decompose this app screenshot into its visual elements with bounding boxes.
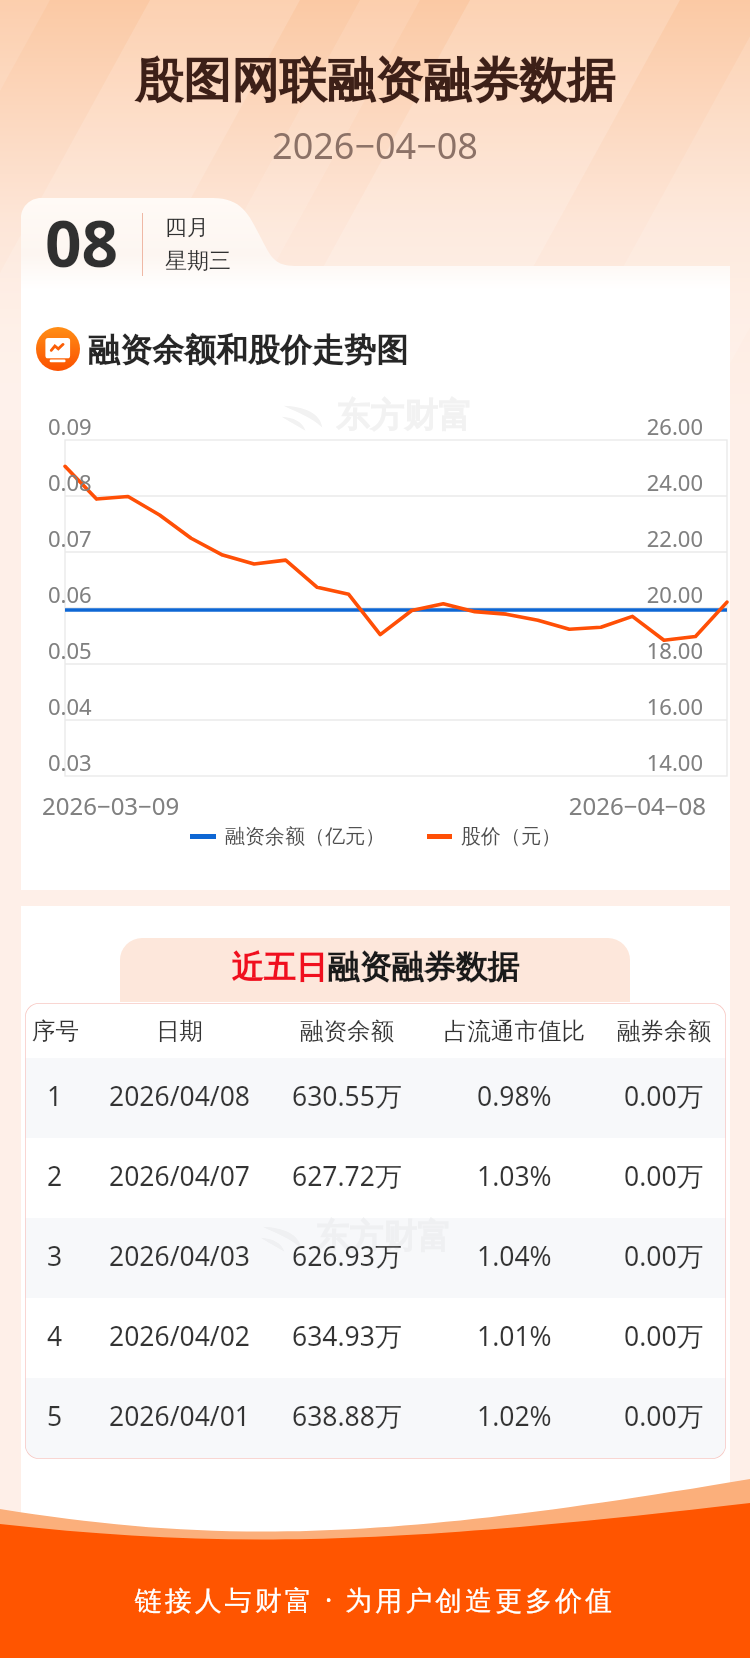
staticText: 0.03 xyxy=(48,747,92,777)
button[interactable] xyxy=(25,1298,726,1378)
staticText: 序号 xyxy=(32,1016,79,1046)
staticText: 20.00 xyxy=(551,579,703,609)
staticText: 0.00万 xyxy=(624,1398,704,1434)
staticText: 26.00 xyxy=(551,411,703,441)
staticText: 2026/04/02 xyxy=(109,1318,250,1354)
staticText: 0.04 xyxy=(48,691,92,721)
staticText: 融资余额 xyxy=(300,1016,394,1046)
staticText: 1.04% xyxy=(477,1238,552,1274)
button[interactable] xyxy=(25,1058,726,1138)
staticText: 24.00 xyxy=(551,467,703,497)
staticText: 2026−03−09 xyxy=(42,789,180,822)
button[interactable] xyxy=(25,1218,726,1298)
staticText: 殷图网联融资融券数据 xyxy=(0,51,750,111)
staticText: 星期三 xyxy=(165,247,231,275)
staticText: 融资余额（亿元） xyxy=(225,824,385,849)
staticText: 627.72万 xyxy=(292,1158,402,1194)
staticText: 16.00 xyxy=(551,691,703,721)
button[interactable] xyxy=(25,1138,726,1218)
staticText: 0.05 xyxy=(48,635,92,665)
staticText: 0.08 xyxy=(48,467,92,497)
button[interactable] xyxy=(25,1378,726,1458)
staticText: 3 xyxy=(47,1238,63,1274)
staticText: 2 xyxy=(47,1158,63,1194)
staticText: 0.09 xyxy=(48,411,92,441)
staticText: 占流通市值比 xyxy=(444,1016,585,1046)
staticText: 634.93万 xyxy=(292,1318,402,1354)
staticText: 股价（元） xyxy=(461,824,561,849)
staticText: 东方财富 xyxy=(336,394,472,437)
staticText: 0.98% xyxy=(477,1078,552,1114)
staticText: 1.01% xyxy=(477,1318,552,1354)
staticText: 四月 xyxy=(165,214,209,242)
staticText: 近五日融资融券数据 xyxy=(21,947,730,987)
staticText: 东方财富 xyxy=(315,1215,451,1258)
staticText: 融资余额和股价走势图 xyxy=(88,330,408,370)
staticText: 1 xyxy=(47,1078,63,1114)
staticText: 0.00万 xyxy=(624,1318,704,1354)
staticText: 2026/04/03 xyxy=(109,1238,250,1274)
staticText: 22.00 xyxy=(551,523,703,553)
staticText: 1.03% xyxy=(477,1158,552,1194)
staticText: 1.02% xyxy=(477,1398,552,1434)
staticText: 638.88万 xyxy=(292,1398,402,1434)
staticText: 18.00 xyxy=(551,635,703,665)
staticText: 融券余额 xyxy=(617,1016,711,1046)
staticText: 14.00 xyxy=(551,747,703,777)
staticText: 0.06 xyxy=(48,579,92,609)
staticText: 链接人与财富 · 为用户创造更多价值 xyxy=(0,1581,750,1618)
staticText: 08 xyxy=(45,199,119,286)
staticText: 0.00万 xyxy=(624,1158,704,1194)
staticText: 630.55万 xyxy=(292,1078,402,1114)
staticText: 2026/04/01 xyxy=(109,1398,250,1434)
staticText: 0.07 xyxy=(48,523,92,553)
staticText: 日期 xyxy=(156,1016,203,1046)
staticText: 2026/04/08 xyxy=(109,1078,250,1114)
staticText: 2026−04−08 xyxy=(516,789,706,822)
staticText: 5 xyxy=(47,1398,63,1434)
staticText: 0.00万 xyxy=(624,1078,704,1114)
staticText: 4 xyxy=(47,1318,63,1354)
staticText: 0.00万 xyxy=(624,1238,704,1274)
staticText: 2026/04/07 xyxy=(109,1158,250,1194)
staticText: 626.93万 xyxy=(292,1238,402,1274)
staticText: 2026−04−08 xyxy=(0,121,750,170)
